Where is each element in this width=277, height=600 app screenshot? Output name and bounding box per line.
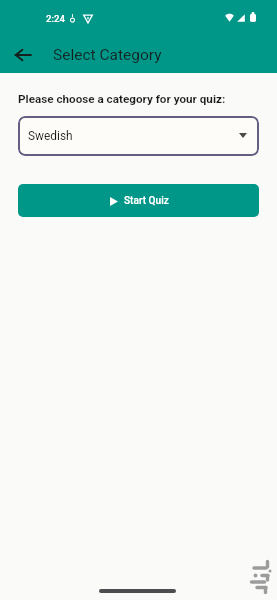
staticText: Select Category (53, 46, 162, 64)
button[interactable]: Start Quiz (18, 184, 259, 217)
button[interactable]: Back (7, 39, 39, 71)
staticText: Start Quiz (124, 195, 169, 207)
staticText: Please choose a category for your quiz: (18, 92, 226, 106)
button[interactable]: Swedish (18, 116, 259, 156)
staticText: 2:24 (46, 13, 65, 24)
staticText: Swedish (28, 129, 73, 143)
